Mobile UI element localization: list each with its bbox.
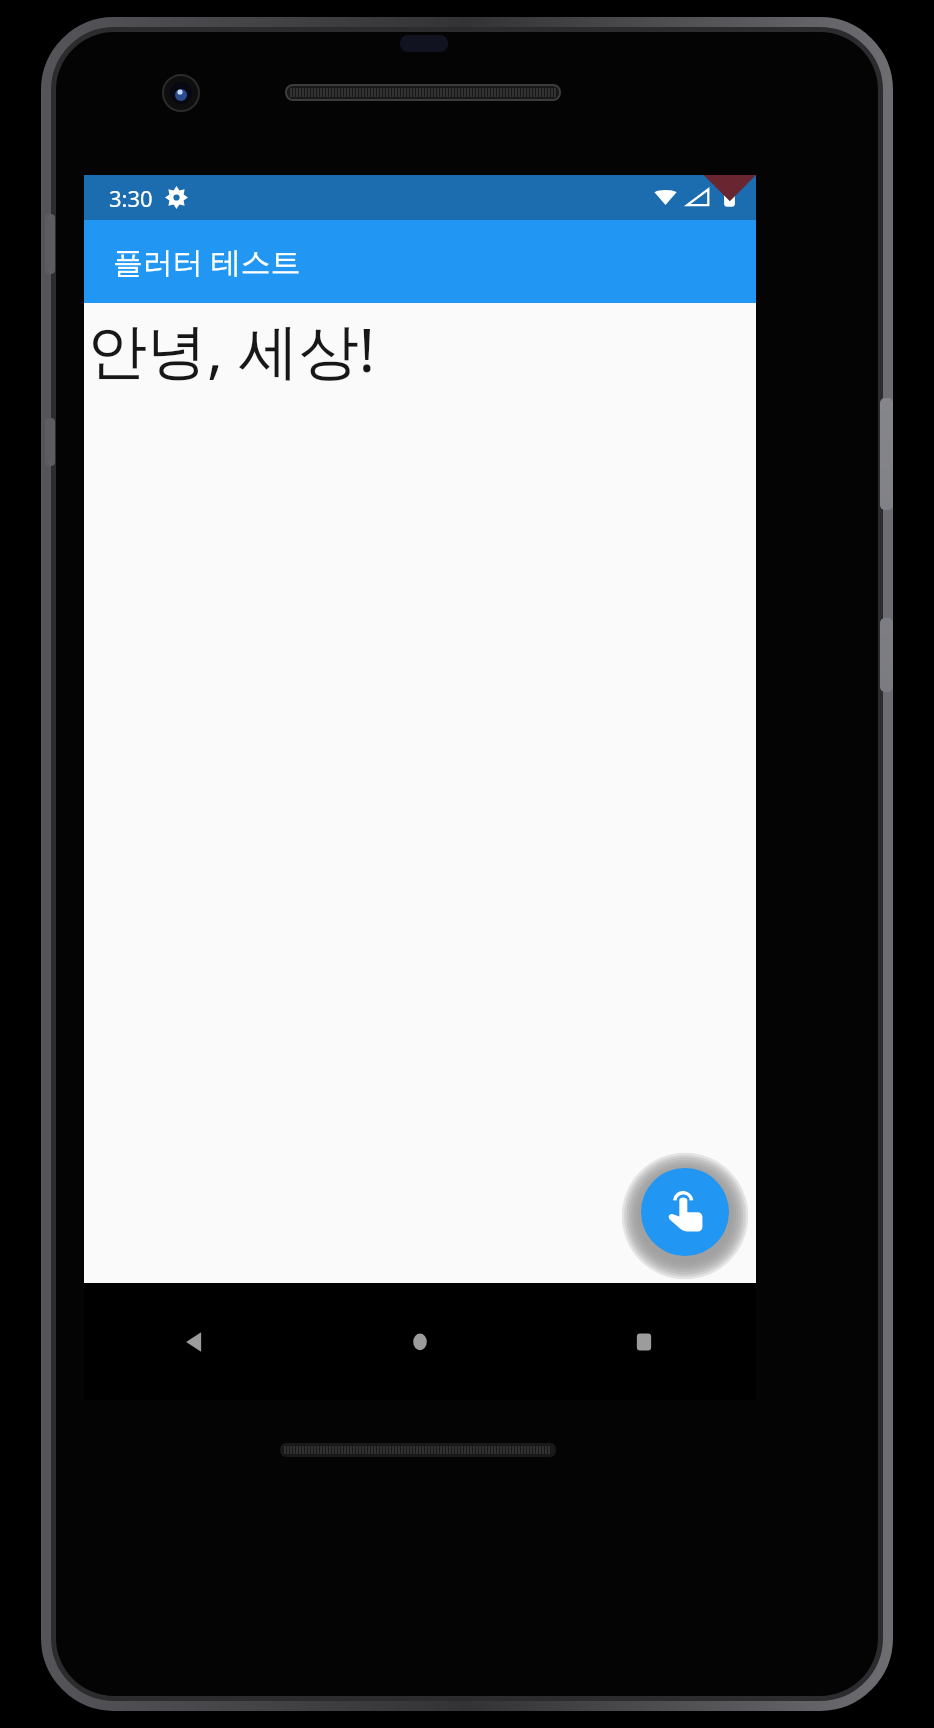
button[interactable]: Back [84, 1283, 308, 1400]
staticText: 안녕, 세상! [87, 308, 375, 390]
staticText: 3:30 [109, 183, 153, 213]
button[interactable]: Home [308, 1283, 532, 1400]
staticText: 플러터 테스트 [113, 241, 301, 282]
button[interactable]: Recents [532, 1283, 756, 1400]
button[interactable]: Tap action [641, 1168, 729, 1256]
